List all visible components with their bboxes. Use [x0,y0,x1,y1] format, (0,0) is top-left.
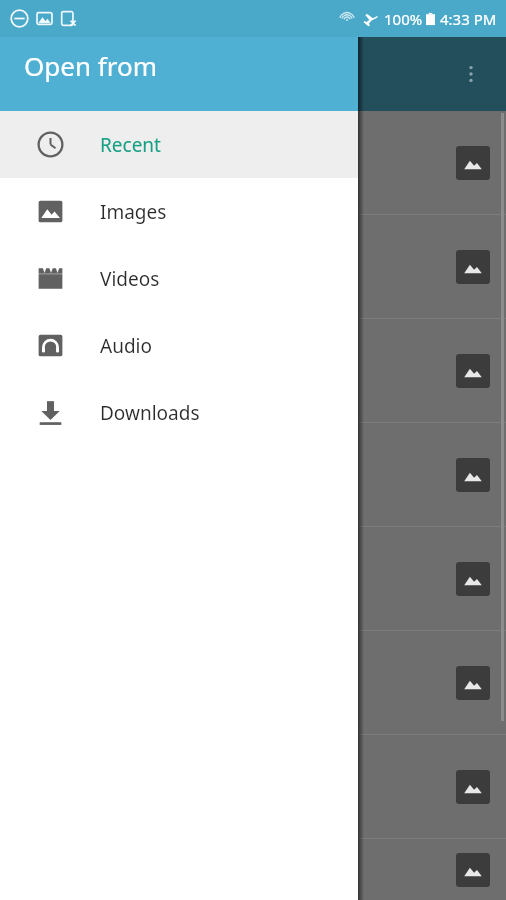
button[interactable]: 23.png [0,735,506,838]
staticText: Videos [100,266,160,292]
button[interactable]: 24.png [0,631,506,734]
button[interactable]: 40.png [0,839,506,900]
button[interactable]: 40.png [0,527,506,630]
button[interactable]: Videos [0,245,358,312]
button[interactable]: Recent [0,111,358,178]
staticText: Downloads [100,400,200,426]
button[interactable]: 59.png [0,319,506,422]
button[interactable]: 26.png [0,111,506,214]
staticText: 26.png [16,149,82,176]
button[interactable]: More options [450,53,492,95]
staticText: Recent [100,132,161,158]
staticText: Images [100,199,167,225]
staticText: 744.jpg [16,253,86,280]
button[interactable]: Images [0,178,358,245]
button[interactable]: Downloads [0,379,358,446]
staticText: Open from [24,48,157,83]
button[interactable]: 744.jpg [0,215,506,318]
button[interactable]: 46.png [0,423,506,526]
staticText: Audio [100,333,152,359]
button[interactable]: Audio [0,312,358,379]
staticText: 4:33 PM [440,9,497,29]
staticText: 100% [384,9,423,29]
